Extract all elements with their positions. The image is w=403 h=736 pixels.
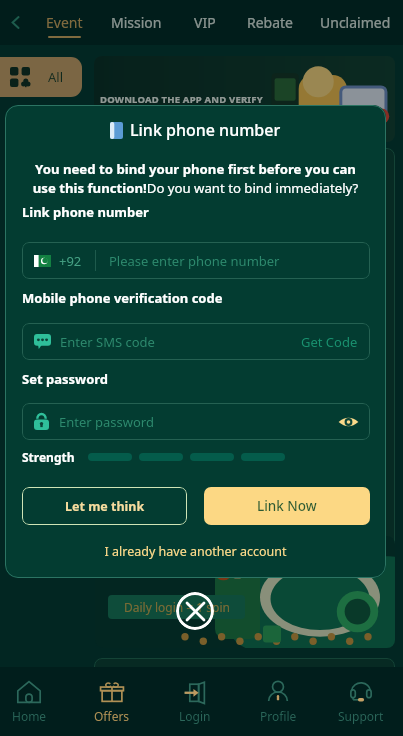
staticText: Home — [12, 708, 47, 724]
staticText: Enter SMS code — [60, 333, 155, 351]
staticText: Please enter phone number — [109, 252, 280, 270]
staticText: Mobile phone verification code — [22, 289, 223, 307]
button[interactable]: I already have another account — [5, 543, 386, 560]
staticText: You need to bind your phone first before… — [22, 160, 369, 197]
staticText: Login — [179, 708, 211, 724]
button[interactable]: Enter password — [22, 403, 370, 440]
staticText: Unclaimed — [320, 13, 391, 32]
staticText: Let me think — [65, 498, 145, 515]
button[interactable]: Rebate — [240, 0, 300, 45]
staticText: Mission — [111, 13, 162, 32]
staticText: +92 — [59, 252, 82, 270]
staticText: Link phone number — [22, 203, 149, 221]
button[interactable]: Profile — [238, 667, 318, 736]
button[interactable]: Link Now — [204, 487, 370, 525]
staticText: Offers — [94, 708, 130, 724]
button[interactable]: Event — [34, 0, 94, 45]
button[interactable]: Home — [0, 667, 69, 736]
staticText: Rebate — [247, 13, 294, 32]
staticText: Strength — [22, 449, 75, 465]
staticText: Enter password — [59, 413, 154, 431]
staticText: Daily login = 1 spin — [124, 599, 230, 615]
button[interactable]: All — [0, 57, 82, 97]
button[interactable]: Offers — [72, 667, 152, 736]
button[interactable]: Support — [321, 667, 401, 736]
button[interactable]: VIP — [182, 0, 227, 45]
staticText: Event — [46, 13, 83, 32]
button[interactable]: Unclaimed — [313, 0, 397, 45]
staticText: Profile — [260, 708, 297, 724]
button[interactable]: Login — [155, 667, 235, 736]
staticText: Link Now — [257, 497, 317, 515]
staticText: Link phone number — [130, 119, 281, 141]
button[interactable]: Back — [0, 0, 30, 45]
staticText: All — [48, 68, 64, 86]
button[interactable]: Show password — [336, 410, 360, 434]
button[interactable]: +92 — [22, 242, 370, 279]
button[interactable]: Close dialog — [176, 592, 214, 630]
button[interactable]: Mission — [106, 0, 166, 45]
button[interactable]: Get Code — [301, 333, 358, 351]
staticText: DOWNLOAD THE APP AND VERIFY — [100, 93, 263, 106]
staticText: VIP — [194, 13, 216, 32]
staticText: Support — [338, 708, 384, 724]
button[interactable]: Enter SMS code — [22, 323, 370, 360]
staticText: Set password — [22, 370, 109, 388]
button[interactable]: Let me think — [22, 487, 187, 525]
